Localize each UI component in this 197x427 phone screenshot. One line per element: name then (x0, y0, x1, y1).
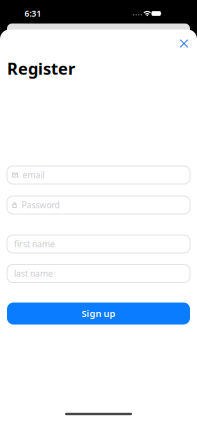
staticText: first name (14, 238, 55, 250)
staticText: 6:31 (24, 8, 41, 19)
button[interactable]: Close (179, 39, 188, 48)
staticText: Register (7, 58, 75, 79)
staticText: Password (21, 199, 59, 211)
button[interactable]: Password (7, 196, 190, 214)
staticText: last name (14, 268, 53, 279)
button[interactable]: last name (7, 264, 190, 282)
button[interactable]: email (7, 166, 190, 184)
button[interactable]: Sign up (7, 302, 190, 324)
staticText: email (22, 169, 44, 181)
staticText: Sign up (81, 307, 115, 320)
button[interactable]: first name (7, 235, 190, 253)
